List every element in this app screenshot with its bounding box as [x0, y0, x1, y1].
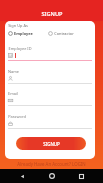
button[interactable]: Contractor	[48, 31, 74, 36]
button[interactable]: Back	[15, 169, 29, 183]
button[interactable]: Home	[45, 169, 59, 183]
staticText: Already Have An Account? LOGIN	[17, 161, 86, 167]
button[interactable]: Employee	[8, 31, 33, 36]
staticText: Employee	[14, 31, 33, 36]
staticText: Sign Up As	[8, 23, 28, 28]
staticText: Password	[8, 114, 26, 119]
button[interactable]: Recent apps	[74, 169, 88, 183]
staticText: Name	[8, 69, 19, 74]
button[interactable]: Already Have An Account? LOGIN	[0, 160, 103, 167]
button[interactable]: SIGNUP	[16, 137, 86, 150]
staticText: Email	[8, 91, 18, 96]
staticText: Employee ID	[8, 46, 32, 51]
staticText: SIGNUP	[41, 10, 63, 18]
staticText: SIGNUP	[43, 141, 60, 147]
staticText: Contractor	[54, 31, 74, 36]
